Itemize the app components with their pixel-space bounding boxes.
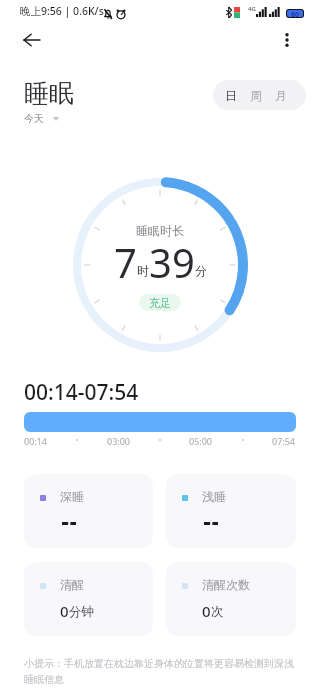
staticText: 7 [114,235,137,289]
staticText: 睡眠 [24,78,74,109]
staticText: 05:00 [189,435,213,447]
staticText: 00:14-07:54 [24,378,139,407]
staticText: 0 [60,601,69,621]
button[interactable]: 清醒次数 [166,562,296,636]
button[interactable]: Back [16,28,48,52]
staticText: 浅睡 [202,489,226,504]
staticText: 次 [211,604,224,620]
staticText: 清醒次数 [202,577,250,592]
staticText: 深睡 [60,489,84,504]
staticText: 39 [149,235,195,289]
staticText: 分 [195,263,207,278]
button[interactable]: 今天 [24,112,59,125]
button[interactable]: 日 [218,80,243,110]
staticText: 时 [137,263,149,278]
staticText: 月 [275,88,287,103]
button[interactable]: 浅睡 [166,474,296,548]
staticText: 小提示：手机放置在枕边靠近身体的位置将更容易检测到深浅睡眠信息 [24,657,296,686]
button[interactable]: More options [272,28,302,52]
staticText: 充足 [149,296,171,310]
staticText: 分钟 [69,604,94,620]
staticText: 03:00 [107,435,131,447]
staticText: 0 [202,601,211,621]
button[interactable]: 月 [268,80,293,110]
staticText: 今天 [24,112,44,125]
staticText: 周 [250,88,262,103]
staticText: 00:14 [24,435,48,447]
button[interactable]: 清醒 [24,562,153,636]
staticText: 07:54 [272,435,296,447]
button[interactable]: 深睡 [24,474,153,548]
staticText: 晚上9:56 | 0.6K/s [20,4,104,18]
staticText: 4G [248,5,256,13]
staticText: 80 [291,10,300,17]
button[interactable]: 周 [243,80,268,110]
staticText: 日 [225,88,237,103]
staticText: 清醒 [60,577,84,592]
staticText: 睡眠时长 [136,223,184,238]
button[interactable]: 充足 [139,294,181,311]
